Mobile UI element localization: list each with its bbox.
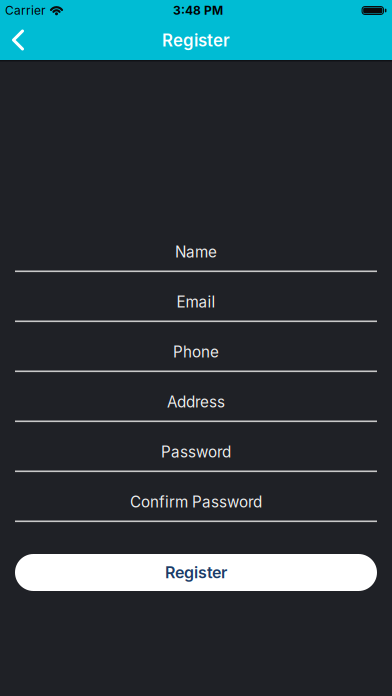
button[interactable]: Name [0, 233, 392, 283]
staticText: Password [161, 443, 231, 461]
staticText: Carrier [5, 3, 46, 18]
staticText: Register [162, 30, 230, 51]
button[interactable]: Address [0, 383, 392, 433]
staticText: Name [175, 243, 217, 261]
staticText: Register [165, 563, 227, 582]
staticText: Address [167, 393, 225, 411]
staticText: Email [176, 293, 215, 311]
button[interactable]: Register [15, 554, 377, 591]
button[interactable]: Back [0, 21, 30, 60]
staticText: 3:48 PM [173, 3, 223, 18]
button[interactable]: Confirm Password [0, 483, 392, 533]
button[interactable]: Phone [0, 333, 392, 383]
staticText: Phone [173, 343, 219, 361]
button[interactable]: Email [0, 283, 392, 333]
staticText: Confirm Password [130, 493, 262, 511]
button[interactable]: Password [0, 433, 392, 483]
